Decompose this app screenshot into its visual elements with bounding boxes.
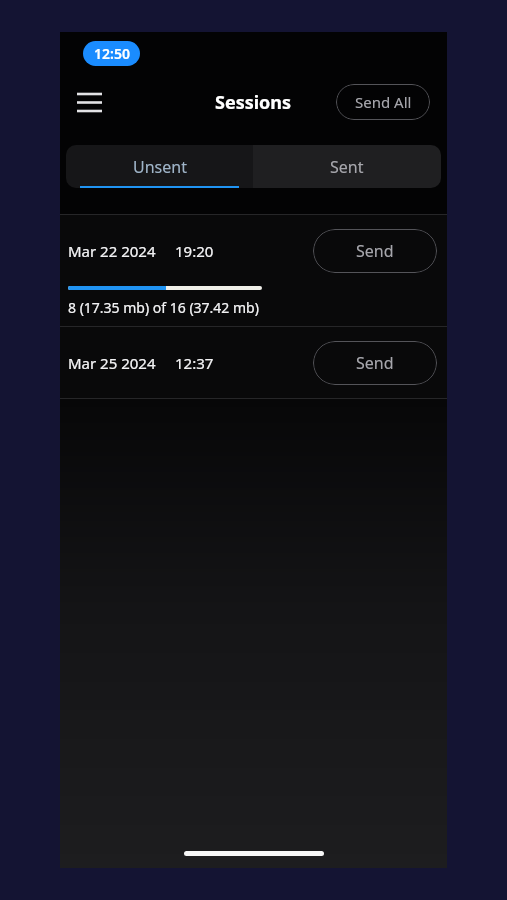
staticText: Send	[356, 352, 394, 374]
staticText: 12:50	[94, 44, 130, 63]
staticText: Send	[356, 240, 394, 262]
button[interactable]: Mar 25 2024	[60, 327, 447, 398]
staticText: 8 (17.35 mb) of 16 (37.42 mb)	[68, 298, 259, 317]
staticText: Unsent	[133, 156, 187, 178]
staticText: 12:37	[175, 353, 214, 373]
button[interactable]: Sent	[253, 145, 441, 188]
button[interactable]: Send	[313, 229, 437, 273]
staticText: Mar 25 2024	[68, 353, 156, 373]
button[interactable]: Menu	[69, 82, 109, 122]
button[interactable]: Unsent	[66, 145, 253, 188]
staticText: Send All	[355, 92, 412, 112]
button[interactable]: Send	[313, 341, 437, 385]
staticText: Sessions	[215, 90, 292, 115]
button[interactable]: Send All	[336, 84, 430, 120]
staticText: Sent	[330, 156, 364, 178]
staticText: Mar 22 2024	[68, 241, 156, 261]
staticText: 19:20	[175, 241, 214, 261]
button[interactable]: Mar 22 2024	[60, 215, 447, 326]
